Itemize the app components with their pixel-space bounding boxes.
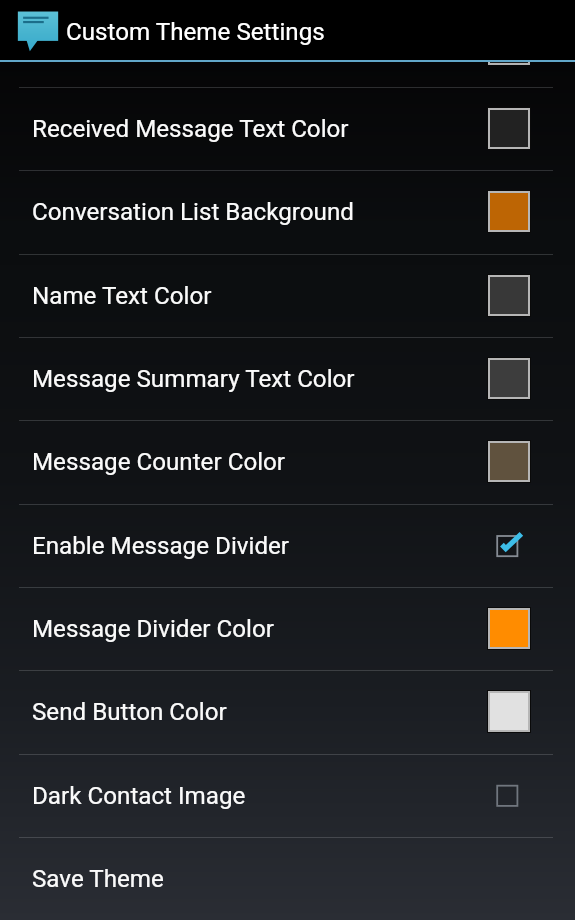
staticText: Enable Message Divider [32, 532, 290, 560]
button[interactable]: Enable Message Divider [0, 505, 575, 587]
button[interactable]: Received Message Text Color [0, 88, 575, 170]
button[interactable]: Send Button Color [0, 671, 575, 753]
button[interactable]: Conversation List Background [0, 171, 575, 253]
staticText: Dark Contact Image [32, 782, 246, 810]
staticText: Received Message Text Color [32, 115, 349, 143]
staticText: Conversation List Background [32, 198, 354, 226]
staticText: Message Counter Color [32, 448, 286, 476]
staticText: Message Summary Text Color [32, 365, 355, 393]
staticText: Name Text Color [32, 282, 212, 310]
staticText: Send Button Color [32, 698, 227, 726]
other: Messages [14, 6, 62, 54]
other: Unchecked [487, 775, 530, 818]
button[interactable]: Dark Contact Image [0, 755, 575, 837]
staticText: Custom Theme Settings [66, 18, 325, 46]
other: Checked [487, 525, 530, 568]
button[interactable]: Name Text Color [0, 255, 575, 337]
button[interactable]: Message Summary Text Color [0, 338, 575, 420]
button[interactable]: Save Theme [0, 838, 575, 920]
button[interactable]: Message Counter Color [0, 421, 575, 503]
staticText: Message Divider Color [32, 615, 274, 643]
button[interactable]: Messages [0, 0, 575, 60]
button[interactable]: Message Divider Color [0, 588, 575, 670]
staticText: Save Theme [32, 865, 164, 893]
